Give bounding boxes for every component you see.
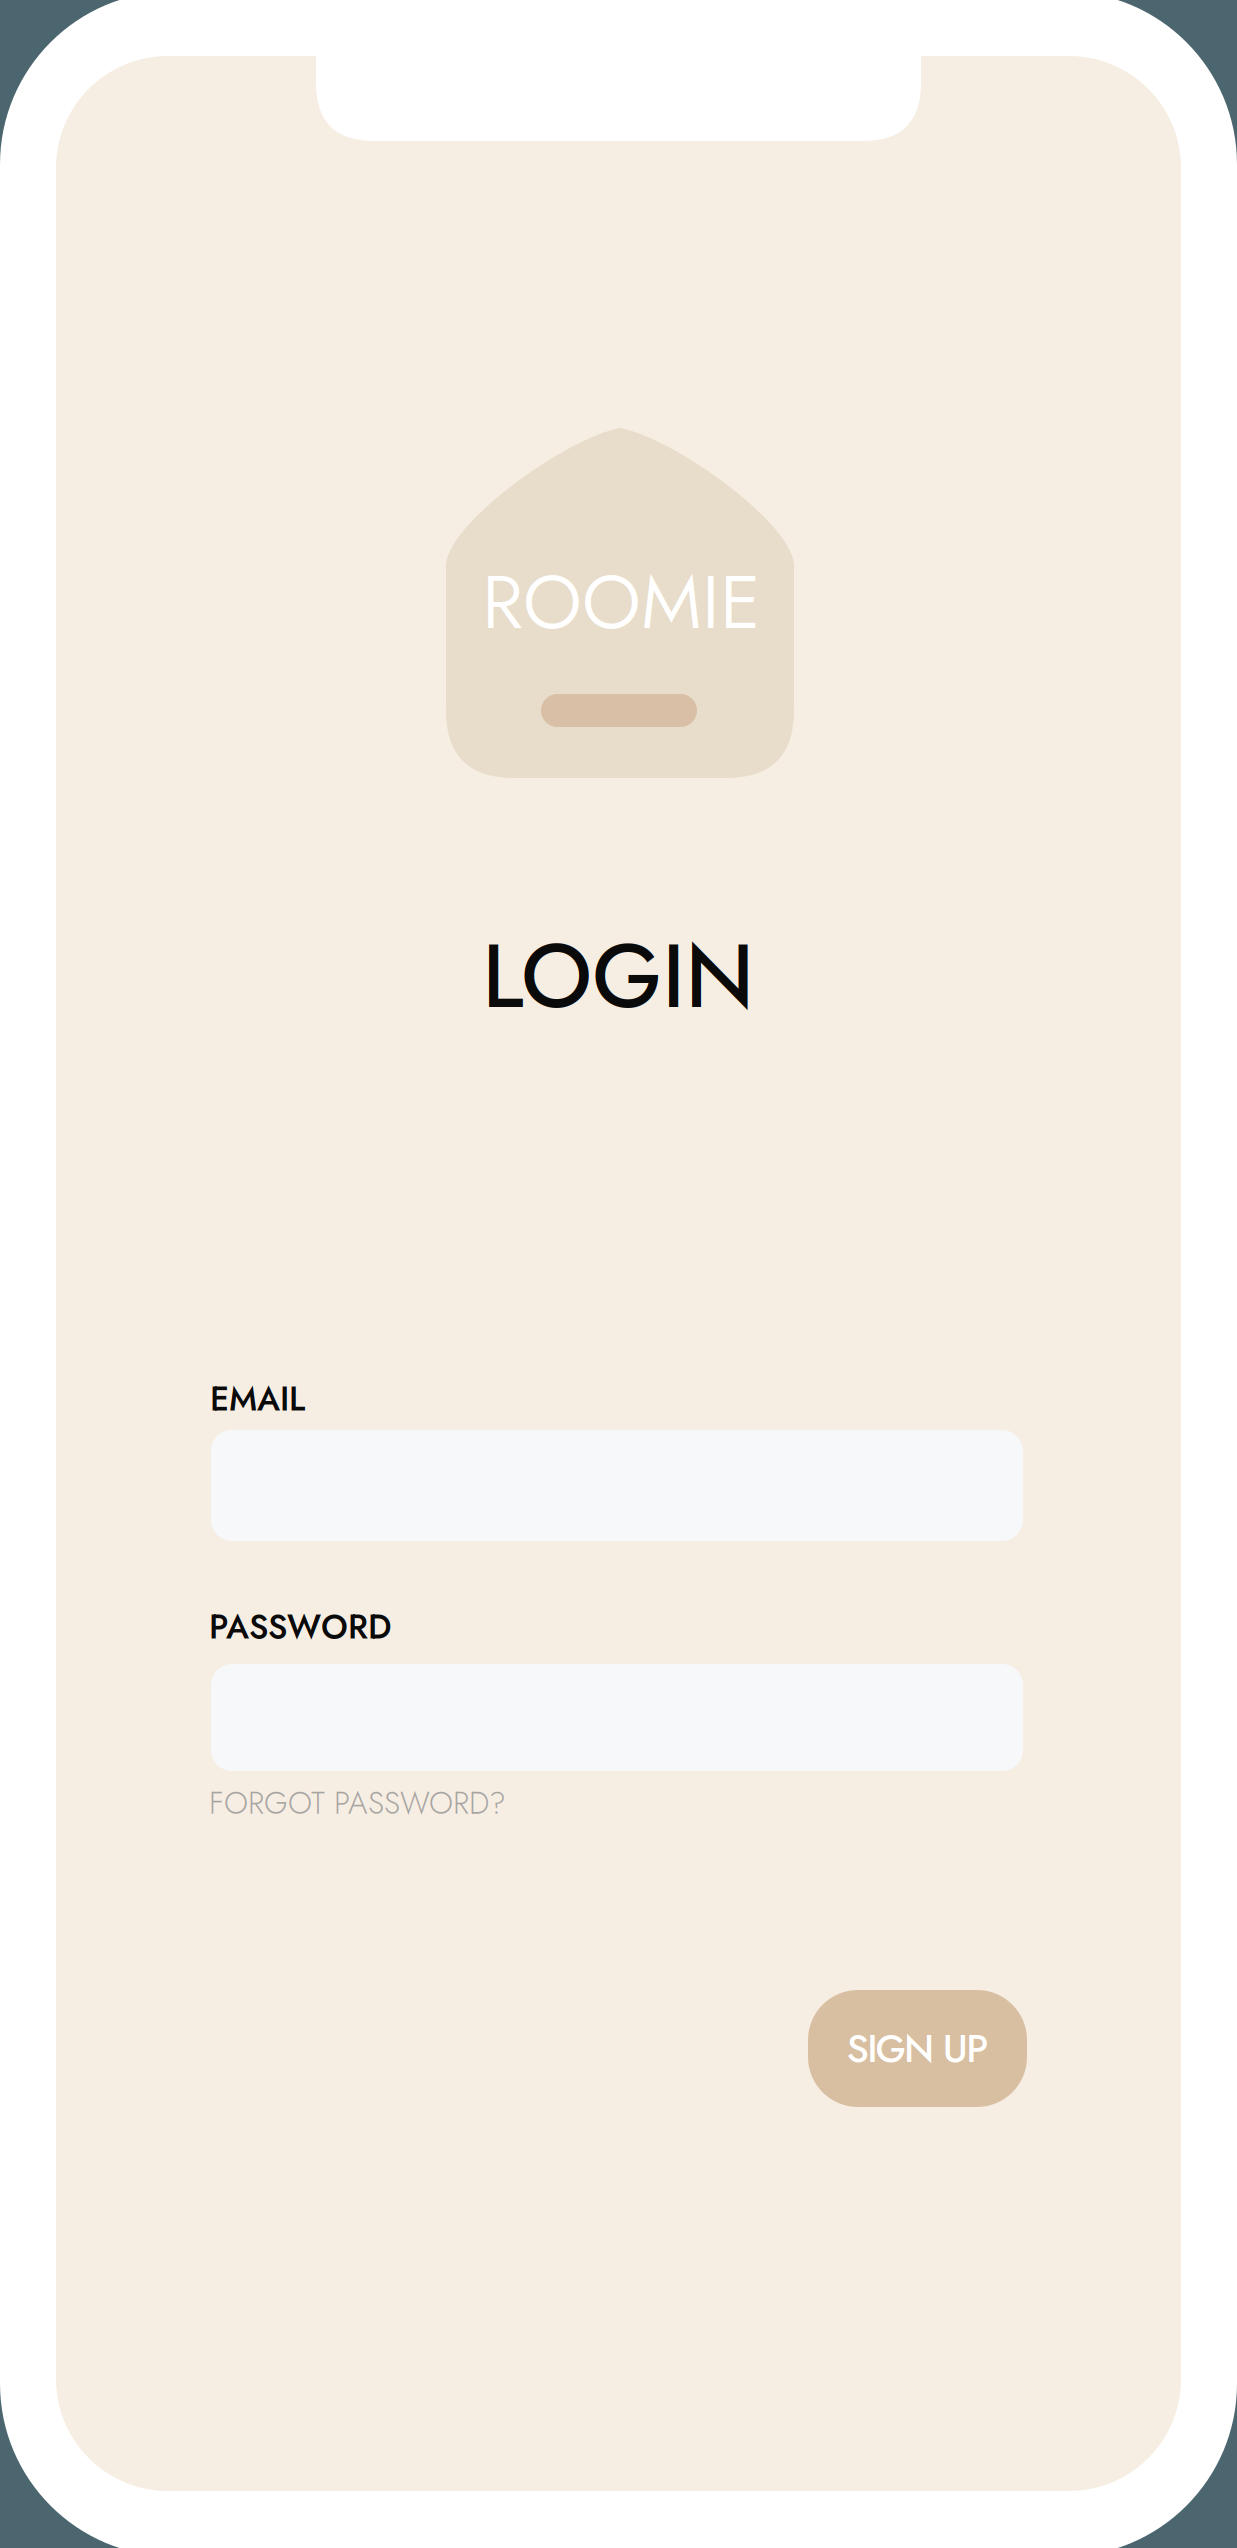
button[interactable]: FORGOT PASSWORD? — [209, 1782, 729, 1824]
staticText: LOGIN — [482, 911, 755, 1041]
button[interactable]: SIGN UP — [808, 1990, 1027, 2107]
staticText: EMAIL — [210, 1375, 305, 1423]
staticText: PASSWORD — [209, 1603, 391, 1651]
staticText: SIGN UP — [847, 2021, 988, 2076]
staticText: ROOMIE — [482, 548, 761, 656]
staticText: FORGOT PASSWORD? — [209, 1781, 506, 1825]
